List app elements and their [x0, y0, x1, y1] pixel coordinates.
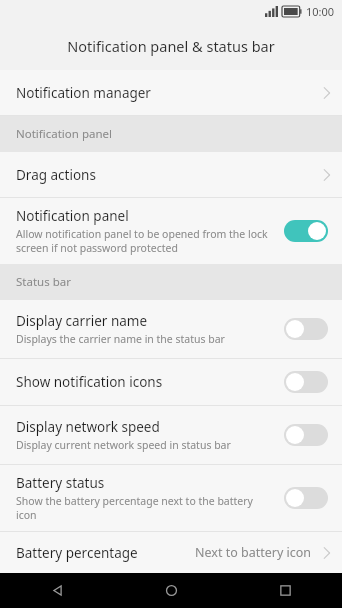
button[interactable]: Back — [0, 573, 114, 608]
staticText: Display current network speed in status … — [16, 438, 231, 452]
button[interactable]: Home — [114, 573, 228, 608]
button[interactable]: Notification panel — [0, 198, 342, 264]
staticText: Notification manager — [16, 84, 151, 102]
staticText: Displays the carrier name in the status … — [16, 332, 225, 346]
button[interactable]: Toggle off — [284, 487, 328, 509]
staticText: Status bar — [16, 274, 71, 290]
staticText: 10:00 — [306, 4, 335, 19]
button[interactable]: Battery status — [0, 465, 342, 531]
staticText: Show notification icons — [16, 373, 163, 391]
button[interactable]: Show notification icons — [0, 359, 342, 405]
staticText: Notification panel & status bar — [67, 36, 275, 56]
button[interactable]: Toggle off — [284, 424, 328, 446]
button[interactable]: Drag actions — [0, 152, 342, 197]
staticText: Display network speed — [16, 418, 160, 436]
button[interactable]: Toggle off — [284, 318, 328, 340]
staticText: Show the battery percentage next to the … — [16, 494, 274, 522]
staticText: Allow notification panel to be opened fr… — [16, 227, 268, 255]
staticText: Display carrier name — [16, 312, 148, 330]
button[interactable]: Recents — [228, 573, 342, 608]
staticText: Notification panel — [16, 207, 129, 225]
button[interactable]: Toggle off — [284, 371, 328, 393]
staticText: Battery percentage — [16, 544, 138, 562]
button[interactable]: Battery percentage — [0, 532, 342, 573]
button[interactable]: Notification manager — [0, 70, 342, 115]
staticText: Next to battery icon — [195, 544, 312, 561]
button[interactable]: Toggle on — [284, 220, 328, 242]
button[interactable]: Display network speed — [0, 406, 342, 464]
button[interactable]: Display carrier name — [0, 300, 342, 358]
staticText: Notification panel — [16, 126, 112, 142]
staticText: Drag actions — [16, 166, 96, 184]
staticText: Battery status — [16, 474, 105, 492]
